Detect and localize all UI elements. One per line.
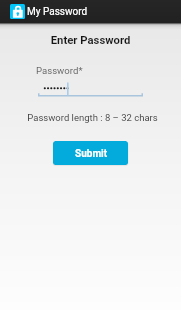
button[interactable]: App icon <box>10 4 25 19</box>
staticText: Password* <box>36 65 83 76</box>
staticText: Enter Password <box>0 34 181 47</box>
button[interactable]: Submit <box>53 141 128 165</box>
staticText: Submit <box>75 148 108 160</box>
staticText: My Password <box>27 6 88 18</box>
staticText: Password length : 8 – 32 chars <box>2 112 181 123</box>
button[interactable] <box>38 81 143 96</box>
